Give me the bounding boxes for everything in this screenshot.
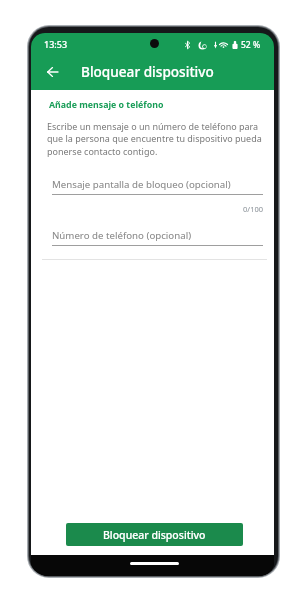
staticText: Número de teléfono (opcional) [52, 229, 192, 242]
staticText: 52 % [241, 39, 261, 51]
staticText: Bloquear dispositivo [81, 62, 214, 81]
staticText: 13:53 [44, 38, 68, 50]
button[interactable]: Back [39, 60, 66, 87]
staticText: Añade mensaje o teléfono [49, 99, 164, 111]
staticText: Bloquear dispositivo [103, 528, 206, 542]
staticText: Mensaje pantalla de bloqueo (opcional) [52, 178, 231, 191]
staticText: 0/100 [31, 204, 263, 214]
staticText: Escribe un mensaje o un número de teléfo… [47, 120, 266, 158]
button[interactable]: Bloquear dispositivo [66, 523, 243, 546]
